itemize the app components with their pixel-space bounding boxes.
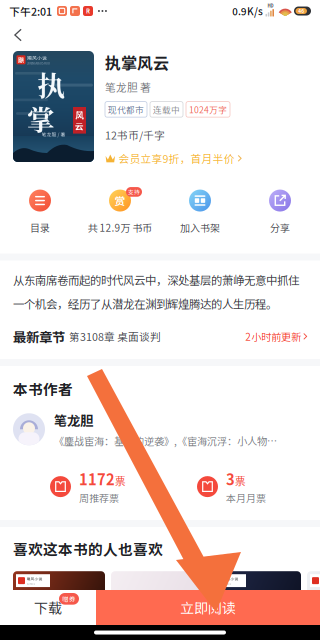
staticText: 掌 [27,98,55,138]
staticText: 笔龙胆 / 著 [41,131,65,138]
staticText: 1172 [79,468,115,489]
staticText: 连载中 [153,103,180,116]
staticText: 第3108章 桌面谈判 [65,329,161,344]
button[interactable]: 最新章节 [13,327,307,346]
staticText: 12书币/千字 [105,127,165,143]
staticText: 会员立享9折，首月半价 [119,151,235,166]
staticText: 1024万字 [189,103,227,116]
staticText: 飓 [18,55,24,64]
staticText: 票 [115,473,126,488]
staticText: 笔龙胆 著 [105,79,151,95]
button[interactable]: 推荐书籍 [307,571,320,615]
button[interactable]: 推荐书籍 [209,571,301,615]
button[interactable]: 会员立享9折，首月半价 [105,151,241,166]
staticText: 下载 [34,597,62,618]
staticText: 最新章节 [13,327,65,346]
button[interactable]: 赏 [80,189,160,235]
staticText: 执掌风云 [105,51,169,74]
staticText: 支持 [128,188,140,196]
button[interactable]: 3 [160,468,307,505]
button[interactable]: 推荐书籍 [111,571,203,615]
staticText: 周推荐票 [79,490,119,505]
button[interactable]: 1172 [13,468,160,505]
staticText: 下午2:01 [9,3,52,19]
staticText: 喜欢这本书的人也喜欢 [13,538,163,559]
staticText: 本月月票 [226,490,266,505]
staticText: 《鏖战宦海：基层的逆袭》,《宦海沉浮：小人物… [54,434,277,448]
staticText: 飓风小说 [222,576,238,582]
staticText: 赏 [114,193,125,208]
staticText: 飓风小说 [26,576,42,582]
button[interactable]: 笔龙胆 [13,410,307,448]
button[interactable]: 返回 [3,22,33,48]
staticText: 46 [298,7,304,14]
staticText: 执 [37,64,65,104]
staticText: 立即阅读 [180,597,236,618]
staticText: 笔龙胆 [54,410,93,430]
staticText: 0.9K/s [232,4,263,18]
staticText: R [86,7,90,15]
staticText: HD [267,2,273,9]
staticText: 共 12.9万 书币 [87,220,152,235]
staticText: 云 [75,119,84,132]
staticText: 赠券 [62,594,76,604]
button[interactable]: 分享 [240,189,320,235]
button[interactable]: 目录 [0,189,80,235]
staticText: 本书作者 [13,378,73,399]
button[interactable]: 推荐书籍 [13,571,105,615]
button[interactable]: 加入书架 [160,189,240,235]
staticText: 加入书架 [180,220,220,235]
staticText: 风 [75,108,84,121]
staticText: 分享 [270,220,290,235]
staticText: JUFENG [222,582,231,585]
staticText: 票 [235,473,246,488]
staticText: 目录 [30,220,50,235]
staticText: 从东南席卷而起的时代风云中，深处基层的萧峥无意中抓住一个机会，经历了从潜龙在渊到… [13,271,299,312]
staticText: 现代都市 [108,103,144,116]
button[interactable]: 立即阅读 [96,590,320,625]
staticText: JUFENG [26,582,35,585]
staticText: 2小时前更新 [245,329,301,344]
staticText: 3 [226,468,235,489]
staticText: 飓风小说 [27,54,47,61]
staticText: JUFENGXIAOSHUO [27,61,50,65]
button[interactable]: 下载 [0,590,96,625]
